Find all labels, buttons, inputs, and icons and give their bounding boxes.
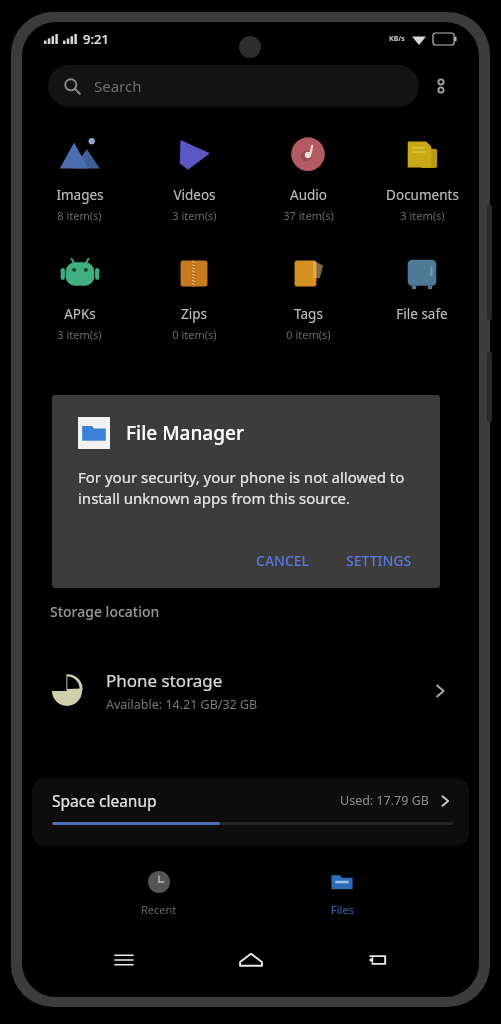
staticText: 8 item(s) [57, 208, 102, 223]
staticText: APKs [64, 305, 96, 323]
button[interactable]: Recents [100, 936, 148, 984]
staticText: SETTINGS [346, 551, 412, 570]
staticText: 9:21 [83, 30, 109, 48]
staticText: Storage location [50, 602, 160, 621]
staticText: Available: 14.21 GB/32 GB [106, 696, 258, 713]
staticText: Files [331, 902, 354, 917]
staticText: Documents [386, 186, 459, 204]
button[interactable]: Recent [114, 864, 204, 923]
button[interactable]: Back [353, 936, 401, 984]
staticText: 3 item(s) [172, 208, 217, 223]
staticText: Space cleanup [52, 790, 157, 811]
staticText: 0 item(s) [286, 327, 331, 342]
staticText: Audio [290, 186, 327, 204]
staticText: 3 item(s) [400, 208, 445, 223]
button[interactable]: Home [227, 936, 275, 984]
button[interactable]: Zips [137, 249, 251, 346]
staticText: Used: 17.79 GB [340, 792, 429, 809]
button[interactable]: Images [22, 130, 137, 227]
button[interactable]: More options [419, 64, 463, 108]
staticText: File safe [396, 305, 448, 323]
button[interactable]: Files [297, 864, 387, 923]
button[interactable]: Documents [365, 130, 479, 227]
button[interactable]: Phone storage [38, 654, 463, 728]
staticText: 37 item(s) [283, 208, 334, 223]
staticText: 0 item(s) [172, 327, 217, 342]
button[interactable]: SETTINGS [336, 543, 422, 578]
staticText: For your security, your phone is not all… [78, 467, 422, 509]
button[interactable]: Tags [251, 249, 365, 346]
staticText: Videos [173, 186, 216, 204]
button[interactable]: Space cleanup [32, 778, 469, 846]
staticText: Tags [294, 305, 323, 323]
staticText: Phone storage [106, 669, 223, 692]
button[interactable]: File safe [365, 249, 479, 327]
staticText: CANCEL [256, 551, 310, 570]
button[interactable]: Audio [251, 130, 365, 227]
staticText: KB/s [389, 34, 405, 44]
staticText: Search [94, 76, 142, 96]
button[interactable]: CANCEL [246, 543, 320, 578]
button[interactable]: Videos [137, 130, 251, 227]
staticText: Recent [141, 902, 177, 917]
button[interactable]: Search [48, 65, 419, 107]
staticText: Zips [181, 305, 207, 323]
staticText: 3 item(s) [57, 327, 102, 342]
staticText: File Manager [126, 420, 244, 446]
staticText: Images [56, 186, 104, 204]
button[interactable]: APKs [22, 249, 137, 346]
